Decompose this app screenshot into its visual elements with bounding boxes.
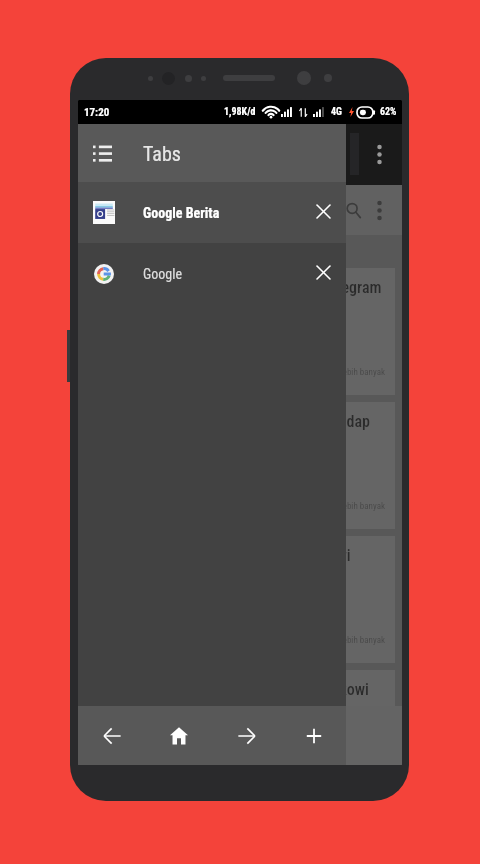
staticText: Tampilkan lebih banyak: [302, 501, 385, 512]
staticText: Tampilkan lebih banyak: [302, 367, 385, 378]
button[interactable]: Search: [338, 185, 368, 235]
button[interactable]: Inilah hal yang harus kita lakukan terha…: [86, 402, 395, 529]
staticText: 62%: [380, 106, 397, 118]
staticText: Begini Cara Membuat Akun Baru di Telegra…: [98, 278, 382, 297]
button[interactable]: Close tab: [302, 253, 344, 295]
staticText: Inilah kabar terbaru seputar Pak Jokowi: [98, 546, 351, 565]
button[interactable]: Inilah kabar terbaru seputar Pak Jokowi: [86, 536, 395, 663]
button[interactable]: Simak kabar terbaru mengenai Pak Jokowi: [86, 670, 395, 765]
button[interactable]: Close tab: [302, 192, 344, 234]
button[interactable]: Google: [78, 243, 346, 304]
staticText: 4G: [331, 106, 342, 118]
staticText: Google Berita: [143, 205, 220, 221]
staticText: Tabs: [143, 142, 181, 165]
button[interactable]: Forward: [226, 715, 268, 757]
staticText: Tampilkan lebih banyak: [302, 635, 385, 646]
staticText: Simak kabar terbaru mengenai Pak Jokowi: [98, 680, 369, 699]
button[interactable]: More options: [369, 135, 389, 173]
button[interactable]: New tab: [293, 715, 335, 757]
button[interactable]: Tabs: [78, 124, 346, 182]
button[interactable]: More options: [369, 185, 389, 235]
button[interactable]: Home: [158, 715, 200, 757]
button[interactable]: Begini Cara Membuat Akun Baru di Telegra…: [86, 268, 395, 395]
staticText: 1,98K/d: [224, 106, 256, 118]
staticText: Inilah hal yang harus kita lakukan terha…: [98, 412, 370, 431]
button[interactable]: Back: [91, 715, 133, 757]
staticText: Google: [143, 266, 183, 282]
staticText: 17:20: [84, 106, 110, 119]
button[interactable]: Google Berita: [78, 182, 346, 243]
